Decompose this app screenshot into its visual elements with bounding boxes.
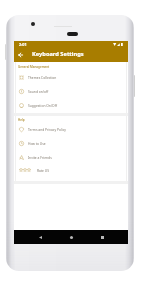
staticText: Sound on/off — [28, 89, 49, 93]
button[interactable]: Home — [66, 232, 77, 243]
button[interactable]: How to Use — [14, 136, 128, 150]
staticText: Terms and Privacy Policy — [28, 127, 66, 131]
staticText: Help — [18, 118, 25, 122]
button[interactable]: Terms and Privacy Policy — [14, 122, 128, 136]
button[interactable]: Back — [14, 48, 27, 62]
button[interactable]: Back — [14, 48, 128, 62]
staticText: Rate US — [37, 168, 50, 172]
button[interactable]: Recents — [97, 232, 108, 243]
staticText: 2:01 — [19, 42, 27, 47]
button[interactable]: Rate US — [14, 163, 128, 177]
staticText: Keyboard Settings — [32, 50, 84, 58]
button[interactable]: Back — [35, 232, 46, 243]
staticText: Suggestion On/Off — [28, 103, 57, 107]
staticText: How to Use — [28, 141, 46, 145]
button[interactable]: Suggestion On/Off — [14, 98, 128, 112]
staticText: Themes Collection — [28, 75, 57, 79]
staticText: General Management — [18, 65, 50, 69]
button[interactable]: Invite a Friends — [14, 150, 128, 164]
button[interactable]: Themes Collection — [14, 70, 128, 84]
staticText: Invite a Friends — [28, 155, 52, 159]
button[interactable]: Sound on/off — [14, 84, 128, 98]
